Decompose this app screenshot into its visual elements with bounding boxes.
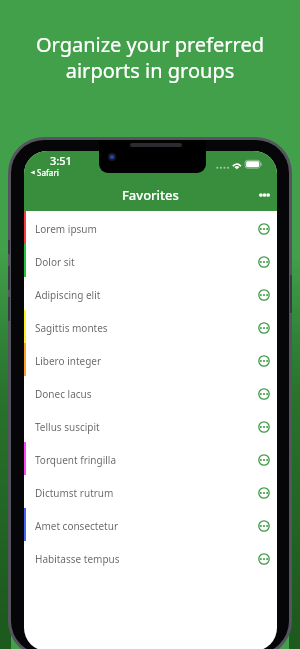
staticText: Amet consectetur <box>35 519 119 533</box>
button[interactable]: Row options <box>252 349 276 373</box>
staticText: Habitasse tempus <box>35 552 120 566</box>
staticText: Safari <box>37 167 59 178</box>
button[interactable]: Row options <box>252 481 276 505</box>
staticText: Tellus suscipit <box>35 420 100 434</box>
staticText: Dictumst rutrum <box>35 486 114 500</box>
staticText: Favorites <box>122 186 179 204</box>
button[interactable]: Lorem ipsum <box>24 211 277 244</box>
button[interactable]: Row options <box>252 250 276 274</box>
button[interactable]: Dictumst rutrum <box>24 475 277 508</box>
button[interactable]: Tellus suscipit <box>24 409 277 442</box>
button[interactable]: Sagittis montes <box>24 310 277 343</box>
staticText: Lorem ipsum <box>35 222 97 236</box>
button[interactable]: Donec lacus <box>24 376 277 409</box>
button[interactable]: Row options <box>252 514 276 538</box>
button[interactable]: Dolor sit <box>24 244 277 277</box>
button[interactable]: Adipiscing elit <box>24 277 277 310</box>
staticText: Donec lacus <box>35 387 92 401</box>
button[interactable]: Row options <box>252 382 276 406</box>
button[interactable]: Row options <box>252 283 276 307</box>
button[interactable]: Row options <box>252 448 276 472</box>
button[interactable]: Row options <box>252 217 276 241</box>
button[interactable]: Row options <box>252 316 276 340</box>
button[interactable]: More options <box>253 184 275 206</box>
button[interactable]: Row options <box>252 415 276 439</box>
button[interactable]: Habitasse tempus <box>24 541 277 574</box>
button[interactable]: Torquent fringilla <box>24 442 277 475</box>
button[interactable]: Back to Safari <box>30 167 59 178</box>
staticText: Organize your preferred airports in grou… <box>0 31 300 83</box>
staticText: Sagittis montes <box>35 321 108 335</box>
staticText: Adipiscing elit <box>35 288 101 302</box>
staticText: 3:51 <box>50 153 72 168</box>
staticText: Torquent fringilla <box>35 453 117 467</box>
button[interactable]: Row options <box>252 547 276 571</box>
staticText: Libero integer <box>35 354 102 368</box>
staticText: Dolor sit <box>35 255 75 269</box>
button[interactable]: Amet consectetur <box>24 508 277 541</box>
button[interactable]: Libero integer <box>24 343 277 376</box>
